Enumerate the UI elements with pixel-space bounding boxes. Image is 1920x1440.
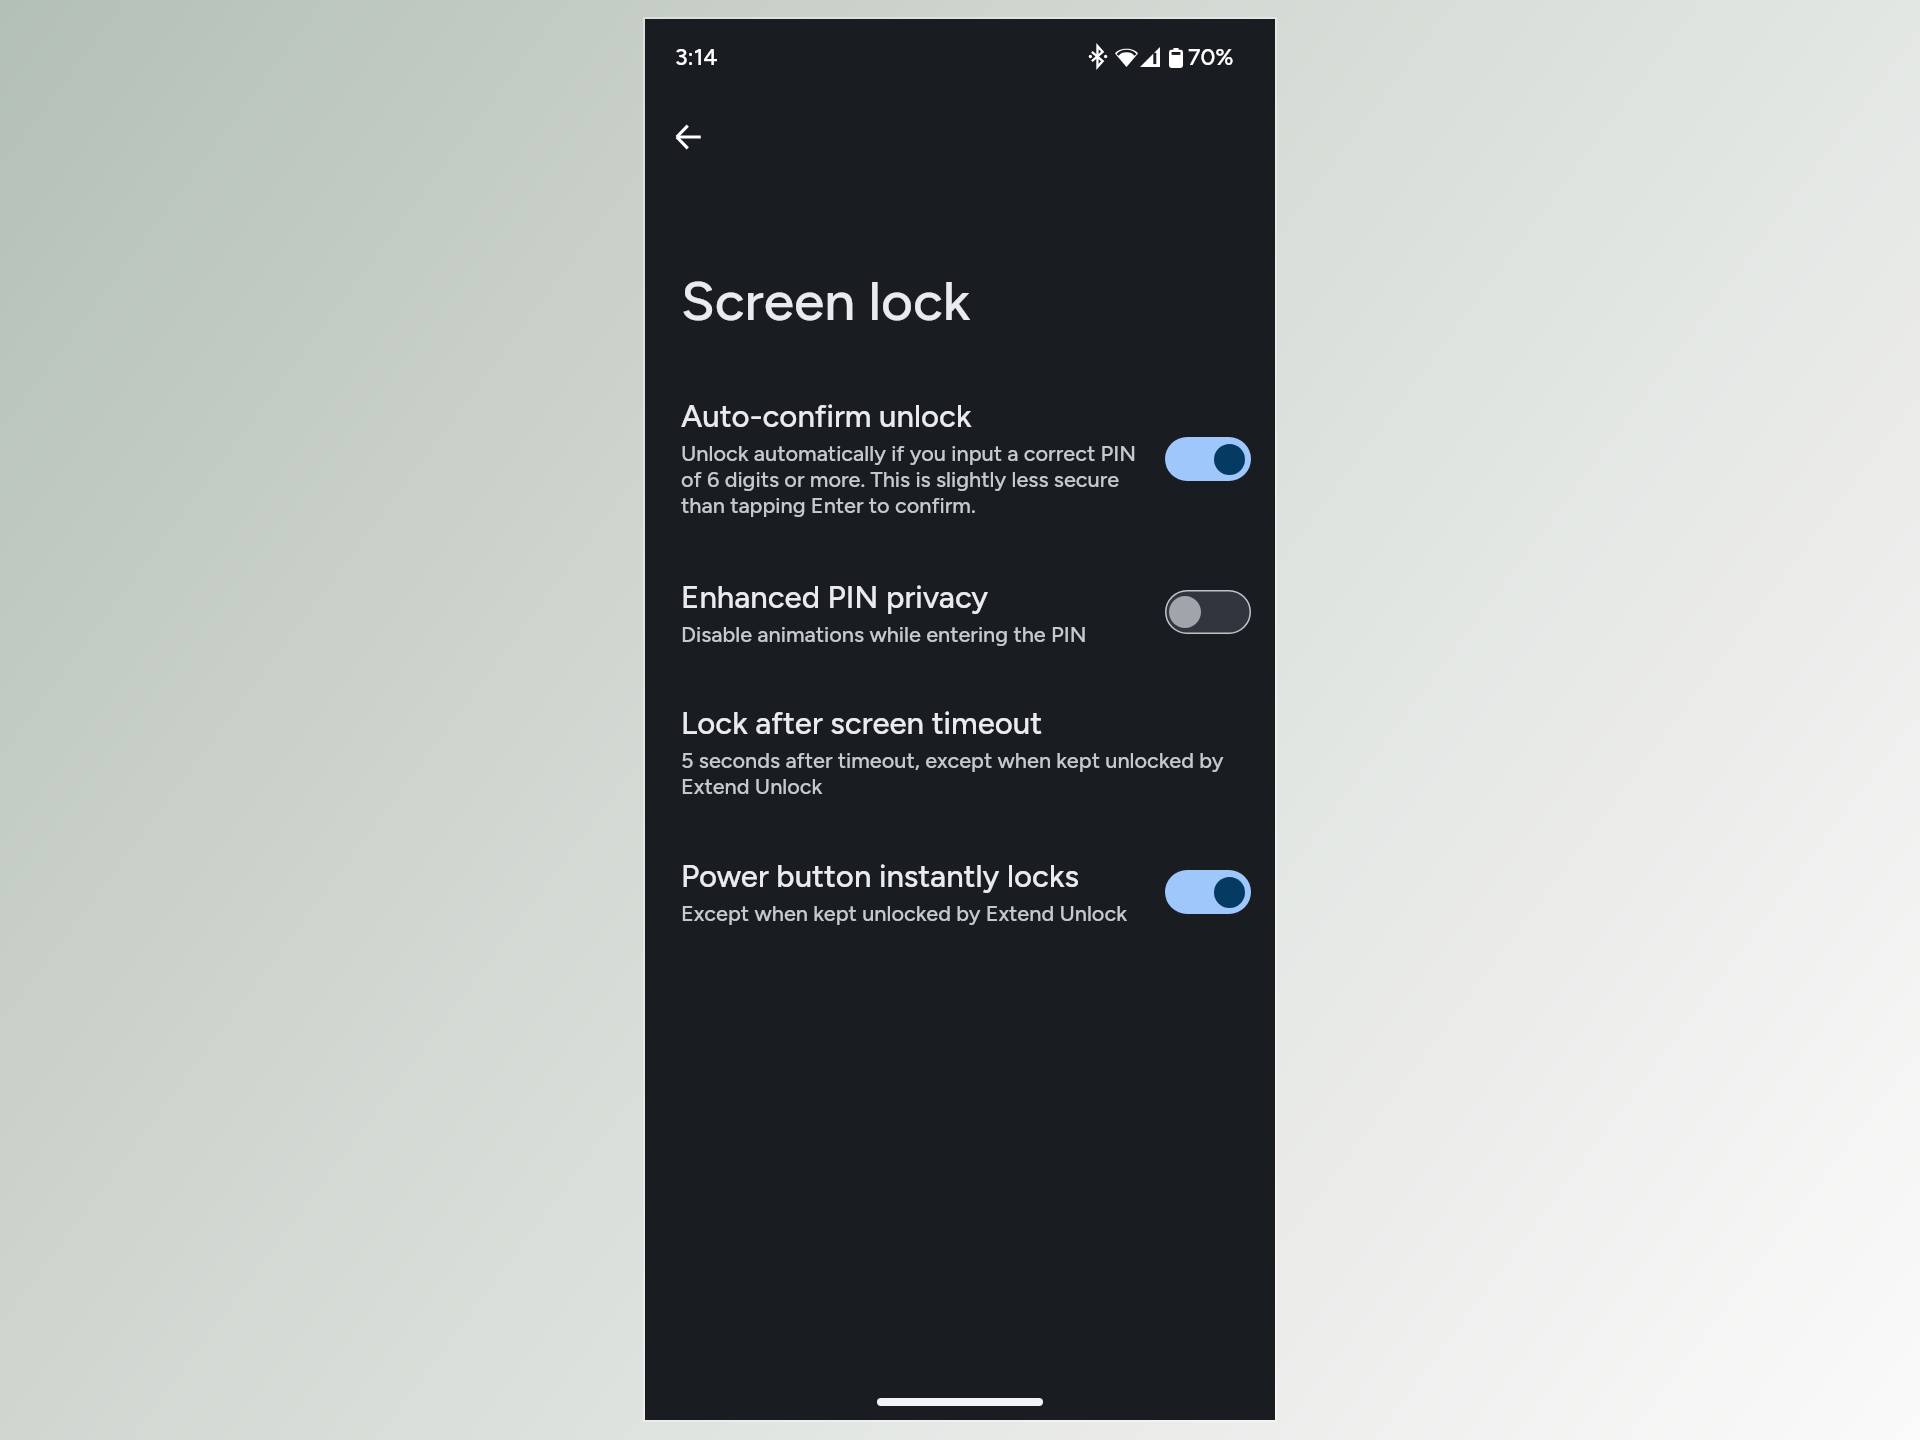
staticText: Except when kept unlocked by Extend Unlo…	[681, 900, 1128, 926]
staticText: Enhanced PIN privacy	[681, 579, 989, 615]
staticText: Screen lock	[681, 268, 971, 334]
staticText: Disable animations while entering the PI…	[681, 621, 1087, 647]
staticText: Auto-confirm unlock	[681, 398, 972, 434]
button[interactable]: Switch on	[1165, 870, 1251, 914]
button[interactable]: Power button instantly locks	[659, 846, 1261, 938]
staticText: Power button instantly locks	[681, 858, 1079, 894]
button[interactable]: Enhanced PIN privacy	[659, 567, 1261, 659]
staticText: 3:14	[675, 43, 718, 71]
button[interactable]: Switch on	[1165, 437, 1251, 481]
staticText: 5 seconds after timeout, except when kep…	[681, 747, 1241, 799]
button[interactable]: Auto-confirm unlock	[659, 386, 1261, 530]
button[interactable]: Back	[652, 101, 724, 173]
button[interactable]: Lock after screen timeout	[659, 693, 1261, 811]
staticText: Unlock automatically if you input a corr…	[681, 440, 1136, 518]
staticText: Lock after screen timeout	[681, 705, 1043, 741]
button[interactable]: Switch off	[1165, 590, 1251, 634]
staticText: 70%	[1188, 43, 1234, 71]
